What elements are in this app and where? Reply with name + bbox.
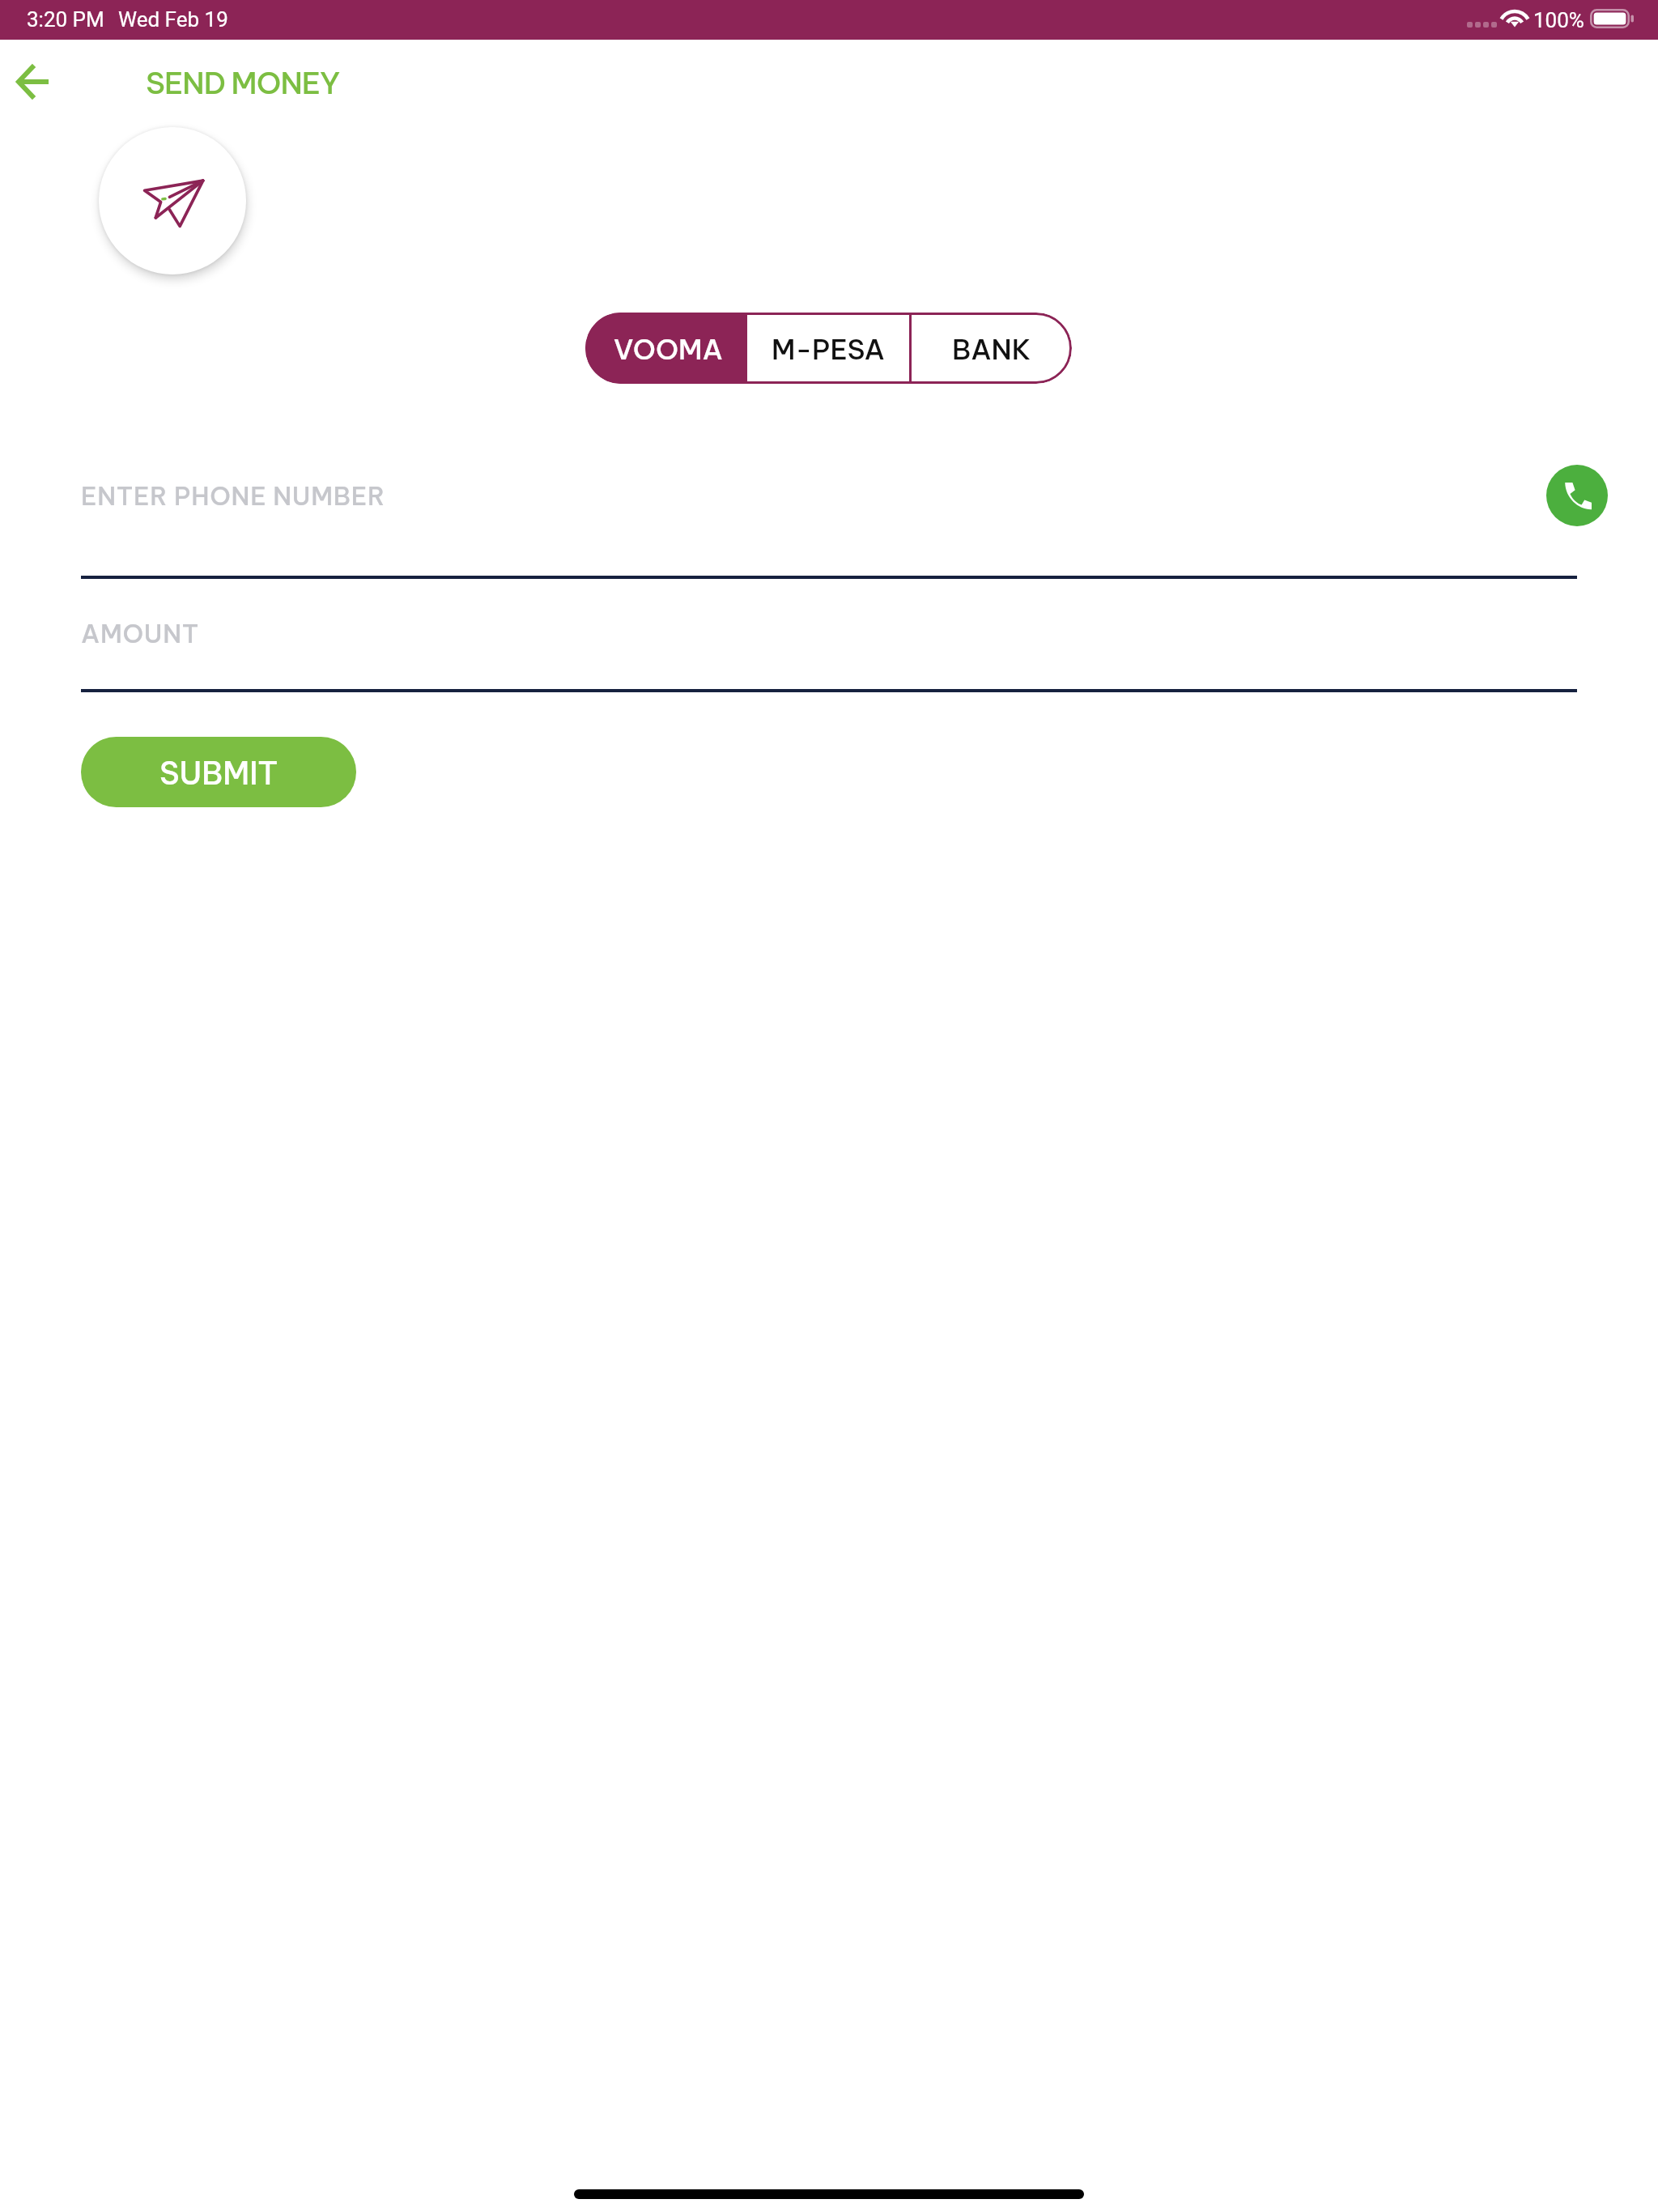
staticText: SEND MONEY <box>146 64 340 102</box>
staticText: Wed Feb 19 <box>118 7 228 32</box>
button[interactable]: Select contact <box>1546 465 1608 526</box>
staticText: VOOMA <box>614 332 723 367</box>
staticText: ENTER PHONE NUMBER <box>81 480 385 512</box>
staticText: BANK <box>952 332 1031 367</box>
staticText: SUBMIT <box>159 754 278 793</box>
button[interactable]: M-PESA <box>747 313 909 384</box>
staticText: 100% <box>1533 8 1584 32</box>
button[interactable]: BANK <box>912 313 1072 384</box>
button[interactable]: SUBMIT <box>81 737 356 807</box>
staticText: 3:20 PM <box>27 7 104 32</box>
staticText: M-PESA <box>772 332 886 367</box>
button[interactable]: Send money <box>99 127 246 274</box>
button[interactable]: VOOMA <box>585 313 747 384</box>
staticText: AMOUNT <box>81 618 200 649</box>
button[interactable]: Back <box>5 54 60 109</box>
